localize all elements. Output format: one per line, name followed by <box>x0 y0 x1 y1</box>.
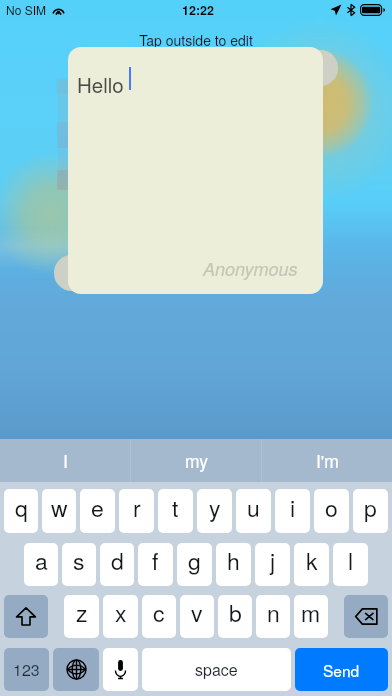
button[interactable]: Shift <box>4 595 48 638</box>
staticText: y <box>209 491 221 524</box>
staticText: u <box>247 491 260 524</box>
staticText: i <box>290 491 296 524</box>
staticText: Send <box>323 659 360 681</box>
button[interactable]: w <box>42 489 76 533</box>
button[interactable]: h <box>216 543 251 586</box>
staticText: g <box>188 544 201 577</box>
button[interactable]: Hello <box>68 47 323 294</box>
button[interactable]: d <box>100 543 134 586</box>
staticText: p <box>364 491 377 524</box>
other: Bluetooth <box>347 4 355 16</box>
button[interactable]: q <box>4 489 38 533</box>
staticText: s <box>73 544 85 577</box>
other: Location <box>330 4 342 16</box>
other: Wi-Fi <box>52 5 65 15</box>
button[interactable]: b <box>218 595 252 638</box>
staticText: 123 <box>13 658 40 681</box>
staticText: b <box>229 596 242 629</box>
button[interactable]: l <box>333 543 368 586</box>
button[interactable]: p <box>353 489 388 533</box>
staticText: d <box>111 544 124 577</box>
button[interactable]: Send <box>295 648 388 691</box>
staticText: my <box>185 448 208 473</box>
button[interactable]: Numbers <box>4 648 49 691</box>
button[interactable]: Backspace <box>344 595 388 638</box>
button[interactable]: my <box>131 439 261 482</box>
button[interactable]: j <box>255 543 290 586</box>
staticText: h <box>227 544 240 577</box>
staticText: q <box>15 491 28 524</box>
staticText: space <box>195 658 238 681</box>
button[interactable]: o <box>314 489 349 533</box>
button[interactable]: y <box>197 489 232 533</box>
button[interactable]: c <box>142 595 176 638</box>
staticText: k <box>306 544 318 577</box>
button[interactable]: I <box>0 439 130 482</box>
staticText: Tap outside to edit <box>0 30 392 50</box>
staticText: o <box>325 491 338 524</box>
staticText: e <box>91 491 104 524</box>
button[interactable]: I'm <box>262 439 392 482</box>
button[interactable]: n <box>256 595 290 638</box>
button[interactable]: u <box>236 489 271 533</box>
staticText: t <box>172 491 179 524</box>
button[interactable]: i <box>275 489 310 533</box>
button[interactable]: k <box>294 543 329 586</box>
button[interactable]: r <box>119 489 154 533</box>
button[interactable]: z <box>64 595 99 638</box>
staticText: v <box>191 596 203 629</box>
staticText: No SIM <box>6 1 47 18</box>
button[interactable]: Switch keyboard <box>53 648 99 691</box>
staticText: c <box>153 596 165 629</box>
button[interactable]: s <box>62 543 96 586</box>
staticText: r <box>133 491 141 524</box>
button[interactable]: space <box>142 648 291 691</box>
button[interactable]: v <box>180 595 214 638</box>
button[interactable]: a <box>24 543 58 586</box>
staticText: j <box>270 544 276 577</box>
staticText: f <box>152 544 159 577</box>
button[interactable]: f <box>138 543 173 586</box>
staticText: z <box>76 596 88 629</box>
button[interactable]: e <box>80 489 115 533</box>
staticText: m <box>301 596 321 629</box>
staticText: a <box>35 544 48 577</box>
staticText: I'm <box>316 448 339 473</box>
button[interactable]: Dictate <box>103 648 138 691</box>
button[interactable]: g <box>177 543 212 586</box>
button[interactable]: t <box>158 489 193 533</box>
staticText: Hello <box>77 69 124 98</box>
staticText: x <box>115 596 127 629</box>
other: Battery <box>360 4 385 16</box>
staticText: w <box>51 491 68 524</box>
staticText: 12:22 <box>182 1 214 19</box>
staticText: I <box>63 448 68 473</box>
staticText: n <box>267 596 280 629</box>
button[interactable]: x <box>103 595 138 638</box>
button[interactable]: m <box>294 595 328 638</box>
staticText: Anonymous <box>203 256 298 281</box>
staticText: l <box>348 544 354 577</box>
